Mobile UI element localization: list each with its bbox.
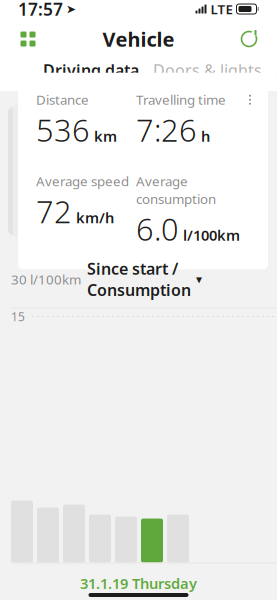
staticText: Average consumption <box>136 172 216 208</box>
staticText: 536 <box>36 109 90 150</box>
staticText: Vehicle <box>102 26 174 52</box>
button[interactable]: More options <box>240 87 260 113</box>
staticText: 15 <box>11 308 25 324</box>
staticText: Driving data <box>43 59 139 81</box>
staticText: 72 <box>36 191 72 232</box>
staticText: ➤ <box>66 2 76 16</box>
staticText: Distance <box>36 91 89 108</box>
staticText: Since start / Consumption <box>87 258 191 300</box>
staticText: 17:57 <box>18 0 63 20</box>
button[interactable]: Driving data <box>43 53 139 87</box>
staticText: Doors & lights <box>153 59 262 81</box>
staticText: h <box>201 126 210 146</box>
button[interactable]: Refresh <box>232 24 266 54</box>
staticText: LTE <box>210 0 232 18</box>
button[interactable]: Doors & lights <box>153 53 262 87</box>
staticText: 7:26 <box>136 109 197 150</box>
staticText: Travelling time <box>136 91 226 108</box>
staticText: S <box>276 59 277 81</box>
staticText: km <box>94 126 117 146</box>
staticText: ▾ <box>196 272 202 286</box>
staticText: Average speed <box>36 172 129 190</box>
staticText: 31.1.19 Thursday <box>80 573 197 593</box>
staticText: l/100km <box>183 225 240 245</box>
button[interactable]: Dashboard <box>11 24 45 54</box>
staticText: 6.0 <box>136 209 179 249</box>
staticText: km/h <box>76 208 114 227</box>
staticText: 30 l/100km <box>11 270 81 288</box>
button[interactable]: S <box>276 53 277 87</box>
button[interactable]: Since start / Consumption <box>87 258 202 300</box>
